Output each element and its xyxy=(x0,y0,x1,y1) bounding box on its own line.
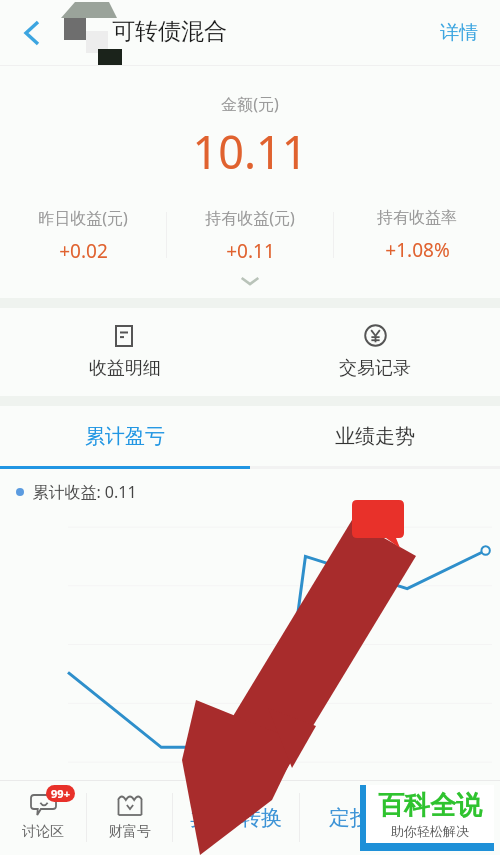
staticText: 可转债混合 xyxy=(112,17,227,46)
button[interactable]: 定投 xyxy=(300,780,400,855)
staticText: +0.11 xyxy=(226,238,275,264)
staticText: 持有收益率 xyxy=(377,208,457,228)
button[interactable]: 99+ xyxy=(0,780,86,855)
staticText: 财富号 xyxy=(109,823,151,841)
staticText: 百科全说 xyxy=(378,789,482,822)
button[interactable] xyxy=(400,780,500,855)
button[interactable]: 详情 xyxy=(432,15,486,51)
button[interactable]: Expand xyxy=(0,266,500,296)
staticText: 持有收益(元) xyxy=(205,207,295,229)
staticText: 累计盈亏 xyxy=(85,424,165,449)
button[interactable]: 持有收益率 xyxy=(334,204,500,266)
button[interactable]: 交易记录 xyxy=(250,308,500,396)
staticText: +1.08% xyxy=(385,237,450,263)
button[interactable]: 持有收益(元) xyxy=(167,204,333,266)
staticText: +0.02 xyxy=(59,238,108,264)
button[interactable]: 卖出/转换 xyxy=(173,780,299,855)
button[interactable]: 昨日收益(元) xyxy=(0,204,166,266)
button[interactable]: 业绩走势 xyxy=(250,406,500,466)
staticText: 定投 xyxy=(329,805,371,831)
button[interactable]: 收益明细 xyxy=(0,308,250,396)
staticText: 交易记录 xyxy=(339,357,411,380)
button[interactable]: 累计盈亏 xyxy=(0,406,250,466)
staticText: 10.11 xyxy=(192,121,308,182)
staticText: 昨日收益(元) xyxy=(38,207,128,229)
staticText: 金额(元) xyxy=(221,93,279,115)
staticText: 99+ xyxy=(51,786,70,801)
staticText: 助你轻松解决 xyxy=(391,823,469,839)
staticText: 讨论区 xyxy=(22,823,64,841)
staticText: 累计收益: 0.11 xyxy=(32,481,137,503)
staticText: 详情 xyxy=(440,21,478,45)
staticText: 收益明细 xyxy=(89,357,161,380)
button[interactable]: 财富号 xyxy=(87,780,172,855)
staticText: 业绩走势 xyxy=(335,424,415,449)
button[interactable]: Back xyxy=(10,11,54,55)
staticText: 卖出/转换 xyxy=(190,803,282,832)
